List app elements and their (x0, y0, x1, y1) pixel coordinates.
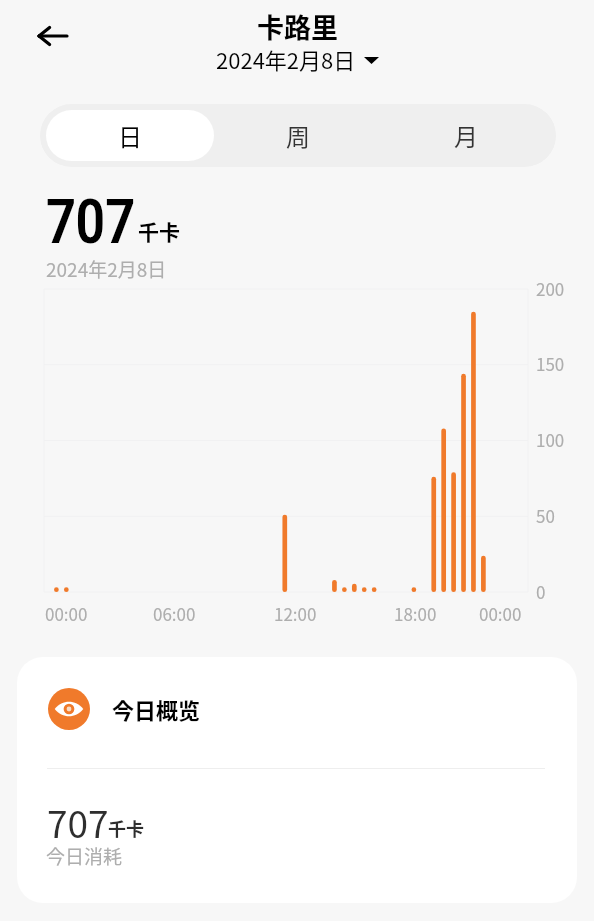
staticText: 0 (536, 579, 546, 604)
staticText: 18:00 (394, 601, 437, 626)
staticText: 周 (286, 118, 310, 153)
staticText: 707 (47, 795, 109, 849)
staticText: 2024年2月8日 (46, 255, 167, 283)
staticText: 50 (536, 503, 555, 528)
button[interactable]: 今日概览 (48, 688, 577, 730)
staticText: 150 (536, 351, 565, 376)
staticText: 12:00 (274, 601, 317, 626)
staticText: 千卡 (108, 815, 144, 841)
staticText: 200 (536, 276, 565, 301)
staticText: 卡路里 (257, 7, 338, 46)
staticText: 月 (454, 118, 478, 153)
staticText: 100 (536, 427, 565, 452)
button[interactable]: Back (30, 13, 76, 59)
staticText: 千卡 (138, 216, 180, 246)
button[interactable]: 日 (46, 110, 214, 161)
staticText: 日 (118, 118, 142, 153)
staticText: 06:00 (153, 601, 196, 626)
button[interactable]: 月 (382, 110, 550, 161)
button[interactable]: 周 (214, 110, 382, 161)
staticText: 今日概览 (112, 693, 201, 725)
staticText: 2024年2月8日 (216, 43, 356, 75)
staticText: 今日消耗 (46, 842, 123, 870)
staticText: 707 (46, 186, 135, 256)
staticText: 00:00 (45, 601, 88, 626)
staticText: 00:00 (479, 601, 522, 626)
